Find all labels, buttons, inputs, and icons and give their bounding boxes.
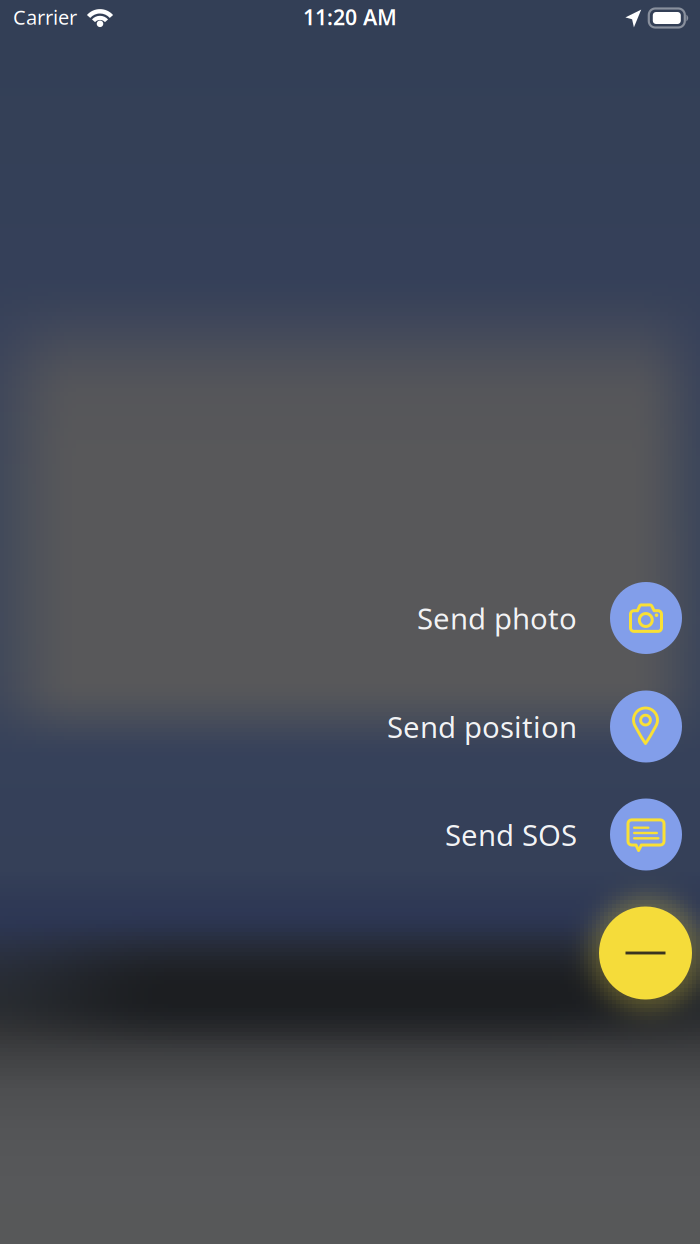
staticText: Send position (387, 707, 577, 746)
button[interactable]: Send position (0, 684, 682, 768)
staticText: 11:20 AM (303, 3, 397, 31)
button[interactable]: Send SOS (0, 792, 682, 876)
staticText: Send SOS (445, 815, 577, 854)
staticText: Carrier (13, 4, 77, 30)
button[interactable]: Close menu (0, 906, 692, 999)
button[interactable]: Send photo (0, 576, 682, 660)
staticText: Send photo (417, 598, 577, 637)
